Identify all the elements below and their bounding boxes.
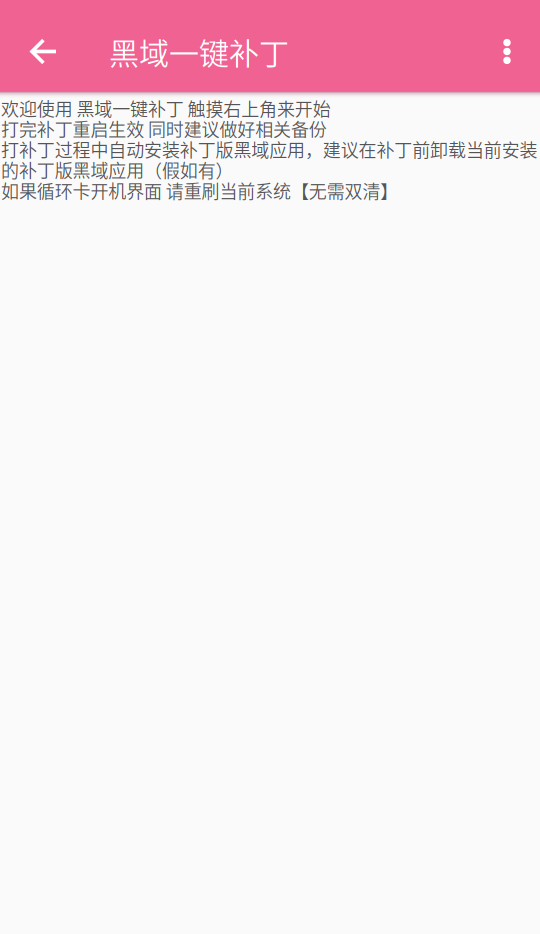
- staticText: 黑域一键补丁: [109, 30, 289, 73]
- button[interactable]: Back: [0, 12, 56, 91]
- button[interactable]: More options: [474, 12, 540, 91]
- staticText: 欢迎使用 黑域一键补丁 触摸右上角来开始 打完补丁重启生效 同时建议做好相关备份…: [1, 95, 537, 203]
